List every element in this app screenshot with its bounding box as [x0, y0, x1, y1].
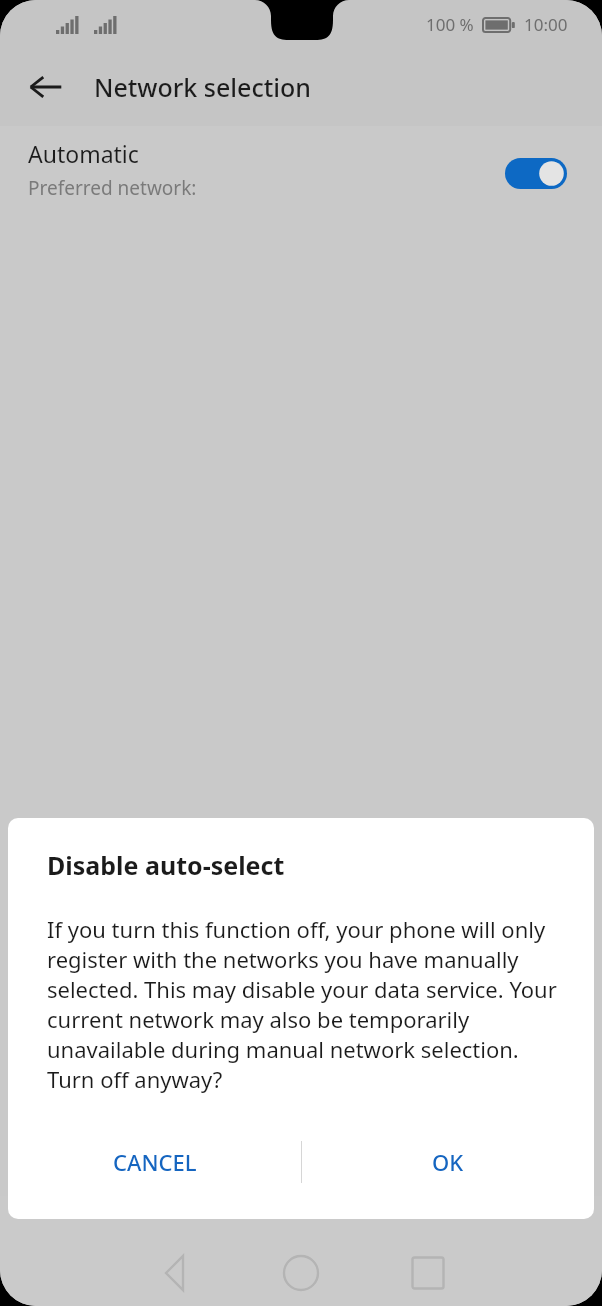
staticText: Network selection: [94, 70, 311, 104]
button[interactable]: Back: [145, 1243, 205, 1303]
button[interactable]: Home: [271, 1243, 331, 1303]
staticText: Preferred network:: [28, 175, 197, 201]
staticText: CANCEL: [113, 1147, 197, 1177]
staticText: OK: [432, 1147, 464, 1177]
staticText: Disable auto-select: [47, 848, 285, 882]
button[interactable]: Recent apps: [398, 1243, 458, 1303]
staticText: Automatic: [28, 138, 139, 169]
staticText: If you turn this function off, your phon…: [47, 914, 568, 1094]
button[interactable]: Automatic toggle, on: [505, 158, 567, 189]
button[interactable]: Automatic: [0, 126, 602, 224]
button[interactable]: OK: [301, 1122, 594, 1202]
staticText: 10:00: [524, 13, 568, 36]
button[interactable]: CANCEL: [8, 1122, 301, 1202]
button[interactable]: Back: [22, 63, 70, 111]
staticText: 100 %: [426, 13, 474, 36]
